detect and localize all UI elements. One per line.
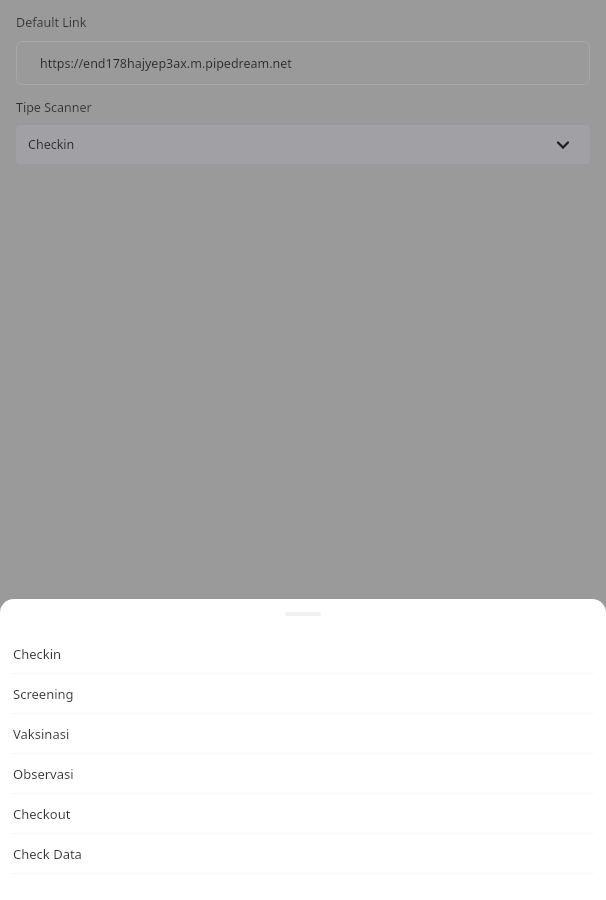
staticText: https://end178hajyep3ax.m.pipedream.net (40, 55, 292, 72)
staticText: Tipe Scanner (16, 99, 92, 116)
staticText: Checkout (13, 805, 71, 823)
button[interactable]: Vaksinasi (0, 714, 606, 754)
staticText: Screening (13, 685, 74, 703)
button[interactable]: Checkin (0, 634, 606, 674)
button[interactable]: Observasi (0, 754, 606, 794)
staticText: Check Data (13, 845, 82, 863)
button[interactable]: Checkout (0, 794, 606, 834)
button[interactable]: Check Data (0, 834, 606, 874)
button[interactable]: https://end178hajyep3ax.m.pipedream.net (16, 41, 590, 85)
staticText: Checkin (28, 136, 75, 153)
staticText: Vaksinasi (13, 725, 70, 743)
staticText: Default Link (16, 14, 87, 31)
button[interactable]: Tipe Scanner dropdown (16, 125, 590, 164)
button[interactable]: Screening (0, 674, 606, 714)
staticText: Observasi (13, 765, 74, 783)
staticText: Checkin (13, 645, 62, 663)
